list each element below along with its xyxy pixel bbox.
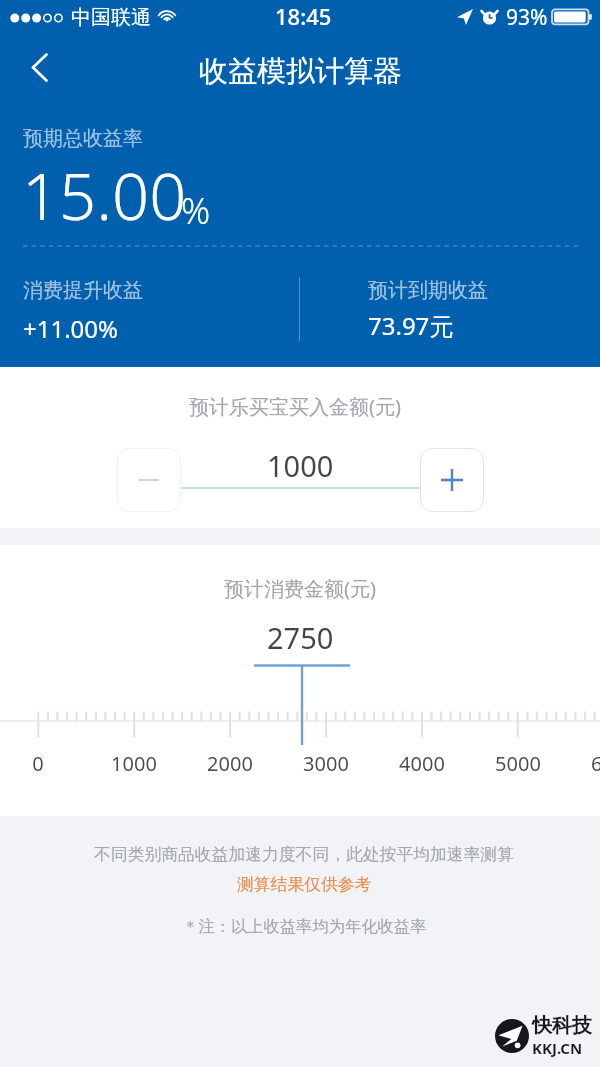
staticText: 快科技	[532, 1013, 592, 1038]
staticText: 18:45	[275, 1, 332, 31]
button[interactable]: Increase amount	[420, 448, 484, 512]
staticText: 测算结果仅供参考	[237, 874, 372, 895]
staticText: 不同类别商品收益加速力度不同，此处按平均加速率测算	[94, 844, 514, 865]
staticText: 消费提升收益	[23, 278, 143, 303]
staticText: 73.97元	[368, 309, 454, 342]
staticText: 4000	[372, 750, 472, 777]
staticText: 15.00	[22, 151, 187, 240]
staticText: ＊注：以上收益率均为年化收益率	[182, 916, 427, 937]
staticText: 1000	[267, 446, 334, 485]
staticText: 2750	[267, 618, 334, 657]
staticText: +11.00%	[23, 312, 119, 345]
staticText: KKJ.CN	[532, 1038, 583, 1058]
staticText: 预计消费金额(元)	[224, 575, 376, 602]
staticText: 93%	[506, 3, 548, 32]
button[interactable]: Decrease amount	[117, 448, 181, 512]
button[interactable]: Back	[8, 41, 70, 91]
staticText: 预期总收益率	[23, 126, 143, 151]
staticText: 1000	[84, 750, 184, 777]
staticText: %	[181, 186, 211, 235]
staticText: 6000	[564, 750, 600, 777]
staticText: 中国联通	[71, 5, 151, 30]
staticText: 预计到期收益	[368, 278, 488, 303]
staticText: 3000	[276, 750, 376, 777]
staticText: 5000	[468, 750, 568, 777]
staticText: 收益模拟计算器	[199, 53, 402, 90]
staticText: 预计乐买宝买入金额(元)	[189, 393, 401, 420]
staticText: 2000	[180, 750, 280, 777]
staticText: 0	[0, 750, 88, 777]
